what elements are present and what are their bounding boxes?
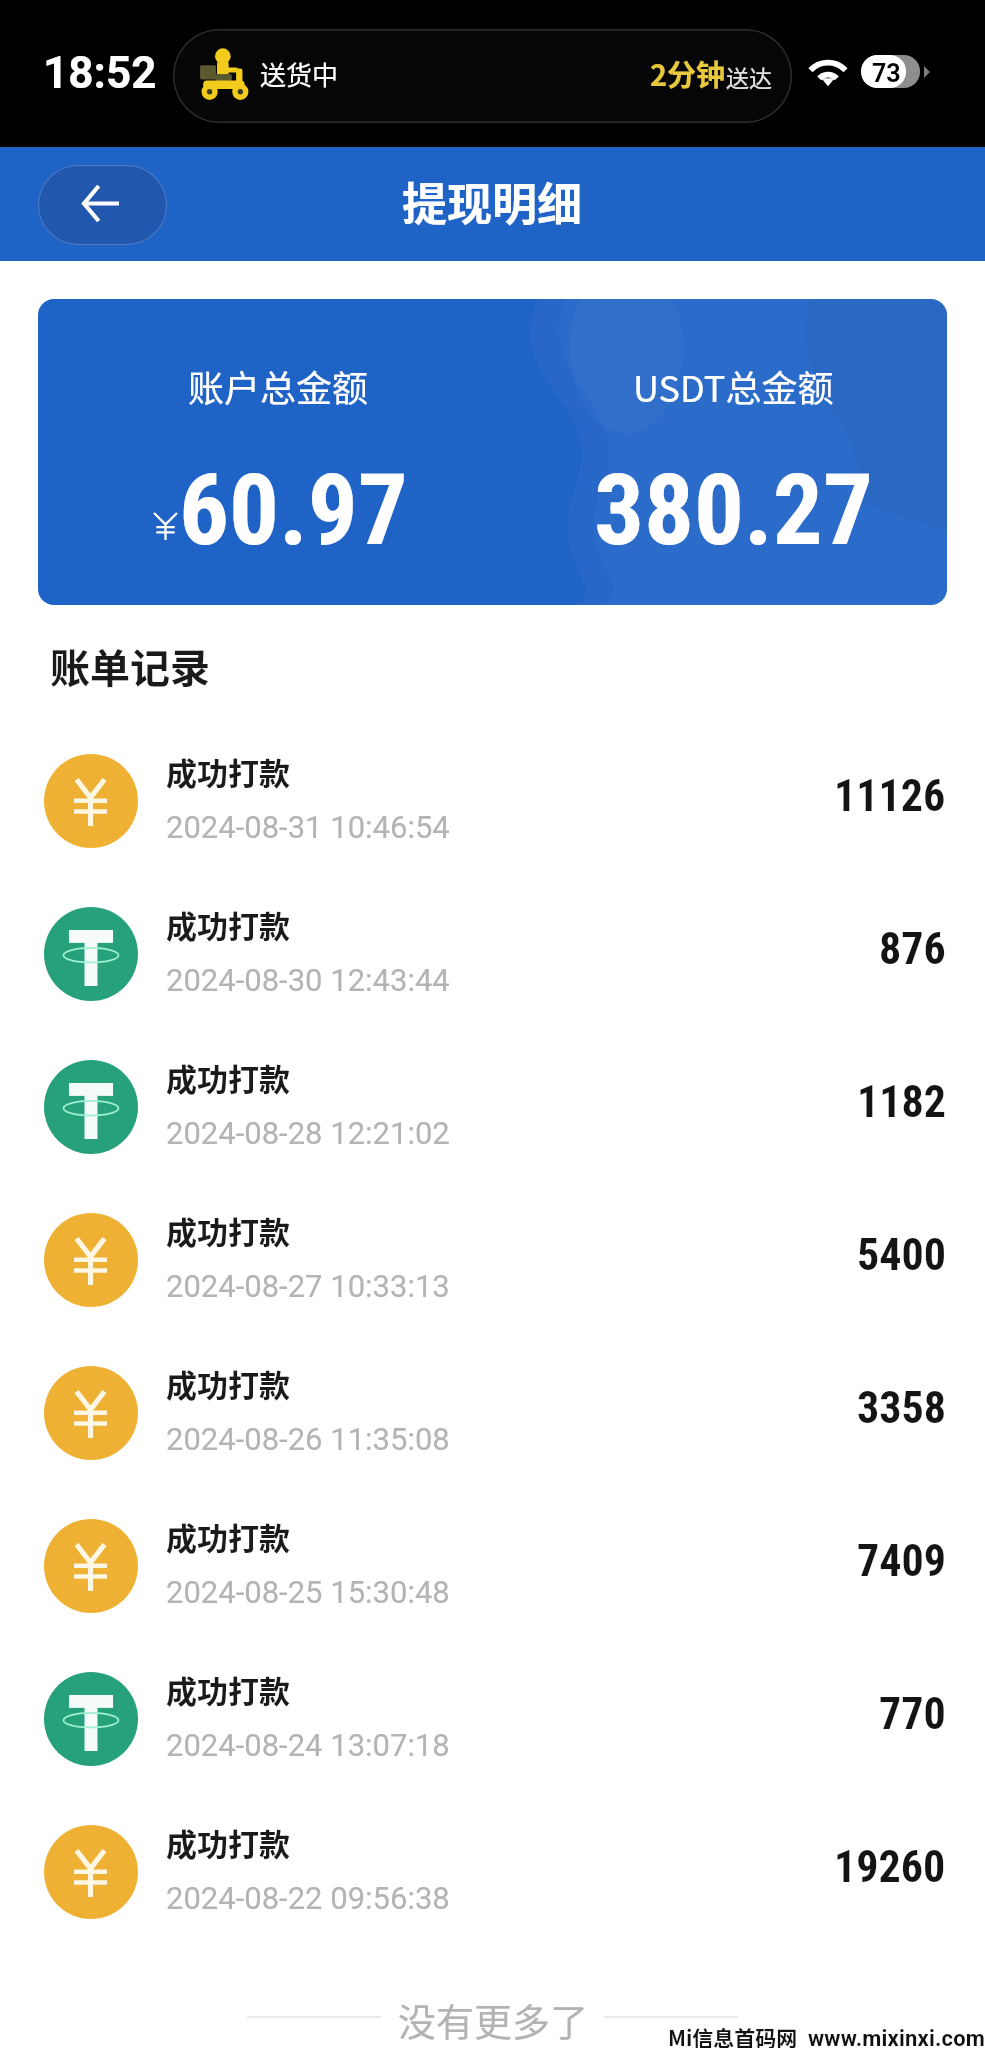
staticText: 2024-08-25 15:30:48 <box>166 1574 450 1610</box>
staticText: 7409 <box>857 1535 946 1587</box>
button[interactable]: 成功打款 <box>0 1030 985 1183</box>
button[interactable]: 成功打款 <box>0 1489 985 1642</box>
staticText: 60.97 <box>179 452 408 568</box>
staticText: 成功打款 <box>166 1208 290 1253</box>
staticText: 没有更多了 <box>398 1992 589 2047</box>
button[interactable]: 成功打款 <box>0 877 985 1030</box>
staticText: 73 <box>872 59 901 88</box>
staticText: 5400 <box>857 1229 946 1281</box>
button[interactable]: 成功打款 <box>0 1795 985 1948</box>
staticText: www.mixinxi.com <box>808 2026 985 2048</box>
staticText: 2024-08-22 09:56:38 <box>166 1880 450 1916</box>
staticText: 11126 <box>834 770 946 822</box>
staticText: 账户总金额 <box>188 360 369 412</box>
staticText: 19260 <box>834 1841 946 1893</box>
staticText: 3358 <box>857 1382 946 1434</box>
staticText: 2024-08-31 10:46:54 <box>166 809 450 845</box>
staticText: 成功打款 <box>166 1514 290 1559</box>
button[interactable]: 成功打款 <box>0 1183 985 1336</box>
button[interactable]: Back <box>38 165 167 245</box>
staticText: 送货中 <box>260 55 339 93</box>
staticText: 2024-08-27 10:33:13 <box>166 1268 450 1304</box>
staticText: 380.27 <box>594 452 873 568</box>
staticText: 2024-08-24 13:07:18 <box>166 1727 450 1763</box>
staticText: 账单记录 <box>50 637 210 695</box>
staticText: 18:52 <box>43 47 157 99</box>
staticText: 2024-08-28 12:21:02 <box>166 1115 450 1151</box>
staticText: Mi信息首码网 <box>668 2022 798 2048</box>
staticText: 成功打款 <box>166 902 290 947</box>
staticText: 1182 <box>857 1076 946 1128</box>
staticText: 成功打款 <box>166 1667 290 1712</box>
staticText: 成功打款 <box>166 1361 290 1406</box>
staticText: 提现明细 <box>402 169 583 234</box>
staticText: 2分钟 <box>650 52 726 94</box>
button[interactable]: 成功打款 <box>0 724 985 877</box>
staticText: 2024-08-26 11:35:08 <box>166 1421 450 1457</box>
staticText: 2024-08-30 12:43:44 <box>166 962 450 998</box>
staticText: 送达 <box>726 60 772 93</box>
staticText: 成功打款 <box>166 1820 290 1865</box>
button[interactable]: 成功打款 <box>0 1336 985 1489</box>
button[interactable]: 成功打款 <box>0 1642 985 1795</box>
staticText: 成功打款 <box>166 749 290 794</box>
staticText: 成功打款 <box>166 1055 290 1100</box>
staticText: 770 <box>879 1688 946 1740</box>
staticText: USDT总金额 <box>633 360 834 412</box>
staticText: 876 <box>879 923 946 975</box>
